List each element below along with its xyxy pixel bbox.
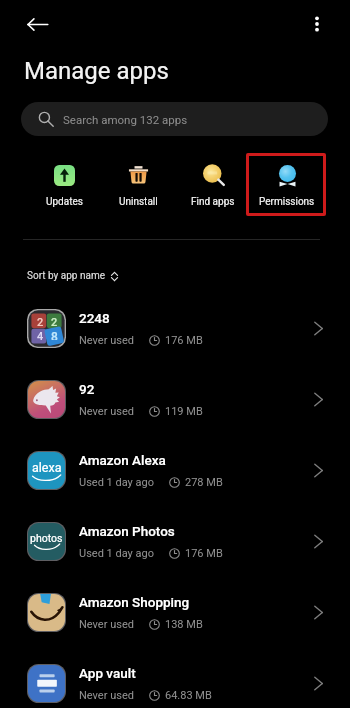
staticText: 2248 — [79, 310, 110, 326]
button[interactable]: Uninstall — [101, 157, 175, 211]
staticText: Amazon Alexa — [79, 452, 166, 468]
button[interactable]: App vault — [0, 648, 350, 708]
staticText: 278 MB — [185, 476, 223, 489]
staticText: Updates — [46, 196, 83, 208]
staticText: 2 — [37, 316, 44, 326]
button[interactable]: Back — [21, 8, 53, 40]
staticText: App vault — [79, 665, 136, 681]
button[interactable]: Permissions — [250, 157, 324, 211]
staticText: 176 MB — [165, 334, 203, 347]
staticText: Amazon Shopping — [79, 594, 190, 610]
staticText: Never used — [79, 689, 134, 702]
button[interactable]: photos — [0, 506, 350, 577]
button[interactable]: Updates — [27, 157, 101, 211]
staticText: 64.83 MB — [165, 689, 212, 702]
staticText: Never used — [79, 405, 134, 418]
staticText: Uninstall — [119, 196, 158, 208]
staticText: 8 — [51, 330, 58, 340]
staticText: alexa — [32, 460, 62, 475]
staticText: Sort by app name — [27, 270, 105, 282]
staticText: Permissions — [259, 196, 315, 208]
staticText: Find apps — [191, 196, 235, 208]
staticText: Amazon Photos — [79, 523, 175, 539]
staticText: 92 — [79, 381, 95, 397]
button[interactable]: 92 — [0, 364, 350, 435]
staticText: 176 MB — [185, 547, 223, 560]
staticText: Manage apps — [24, 57, 169, 85]
staticText: 4 — [37, 330, 44, 340]
button[interactable]: Find apps — [176, 157, 250, 211]
staticText: Used 1 day ago — [79, 476, 154, 489]
staticText: Never used — [79, 334, 134, 347]
staticText: photos — [30, 532, 63, 544]
button[interactable]: Search among 132 apps — [21, 102, 328, 136]
staticText: 2 — [51, 316, 58, 326]
button[interactable]: Amazon Shopping — [0, 577, 350, 648]
button[interactable]: More options — [301, 8, 333, 40]
staticText: Used 1 day ago — [79, 547, 154, 560]
button[interactable]: alexa — [0, 435, 350, 506]
staticText: Never used — [79, 618, 134, 631]
staticText: 119 MB — [165, 405, 203, 418]
button[interactable]: 2 — [0, 293, 350, 364]
button[interactable]: Sort by app name — [24, 267, 122, 285]
staticText: Search among 132 apps — [63, 113, 188, 126]
staticText: 138 MB — [165, 618, 203, 631]
